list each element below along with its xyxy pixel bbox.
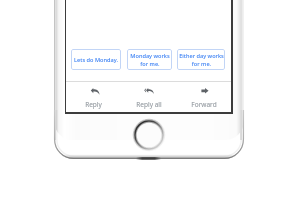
button[interactable]: Either day works for me. (177, 49, 225, 70)
staticText: Forward (191, 100, 217, 109)
button[interactable]: Reply all (121, 82, 176, 109)
button[interactable]: Lets do Monday. (71, 49, 121, 70)
staticText: Lets do Monday. (74, 56, 118, 64)
staticText: Reply (85, 100, 102, 109)
button[interactable]: Home (134, 120, 164, 150)
staticText: Either day works for me. (179, 52, 224, 67)
staticText: Monday works for me. (130, 52, 170, 67)
button[interactable]: Reply (66, 82, 121, 109)
button[interactable]: Monday works for me. (127, 49, 172, 70)
staticText: Reply all (136, 100, 162, 109)
button[interactable]: Forward (176, 82, 231, 109)
